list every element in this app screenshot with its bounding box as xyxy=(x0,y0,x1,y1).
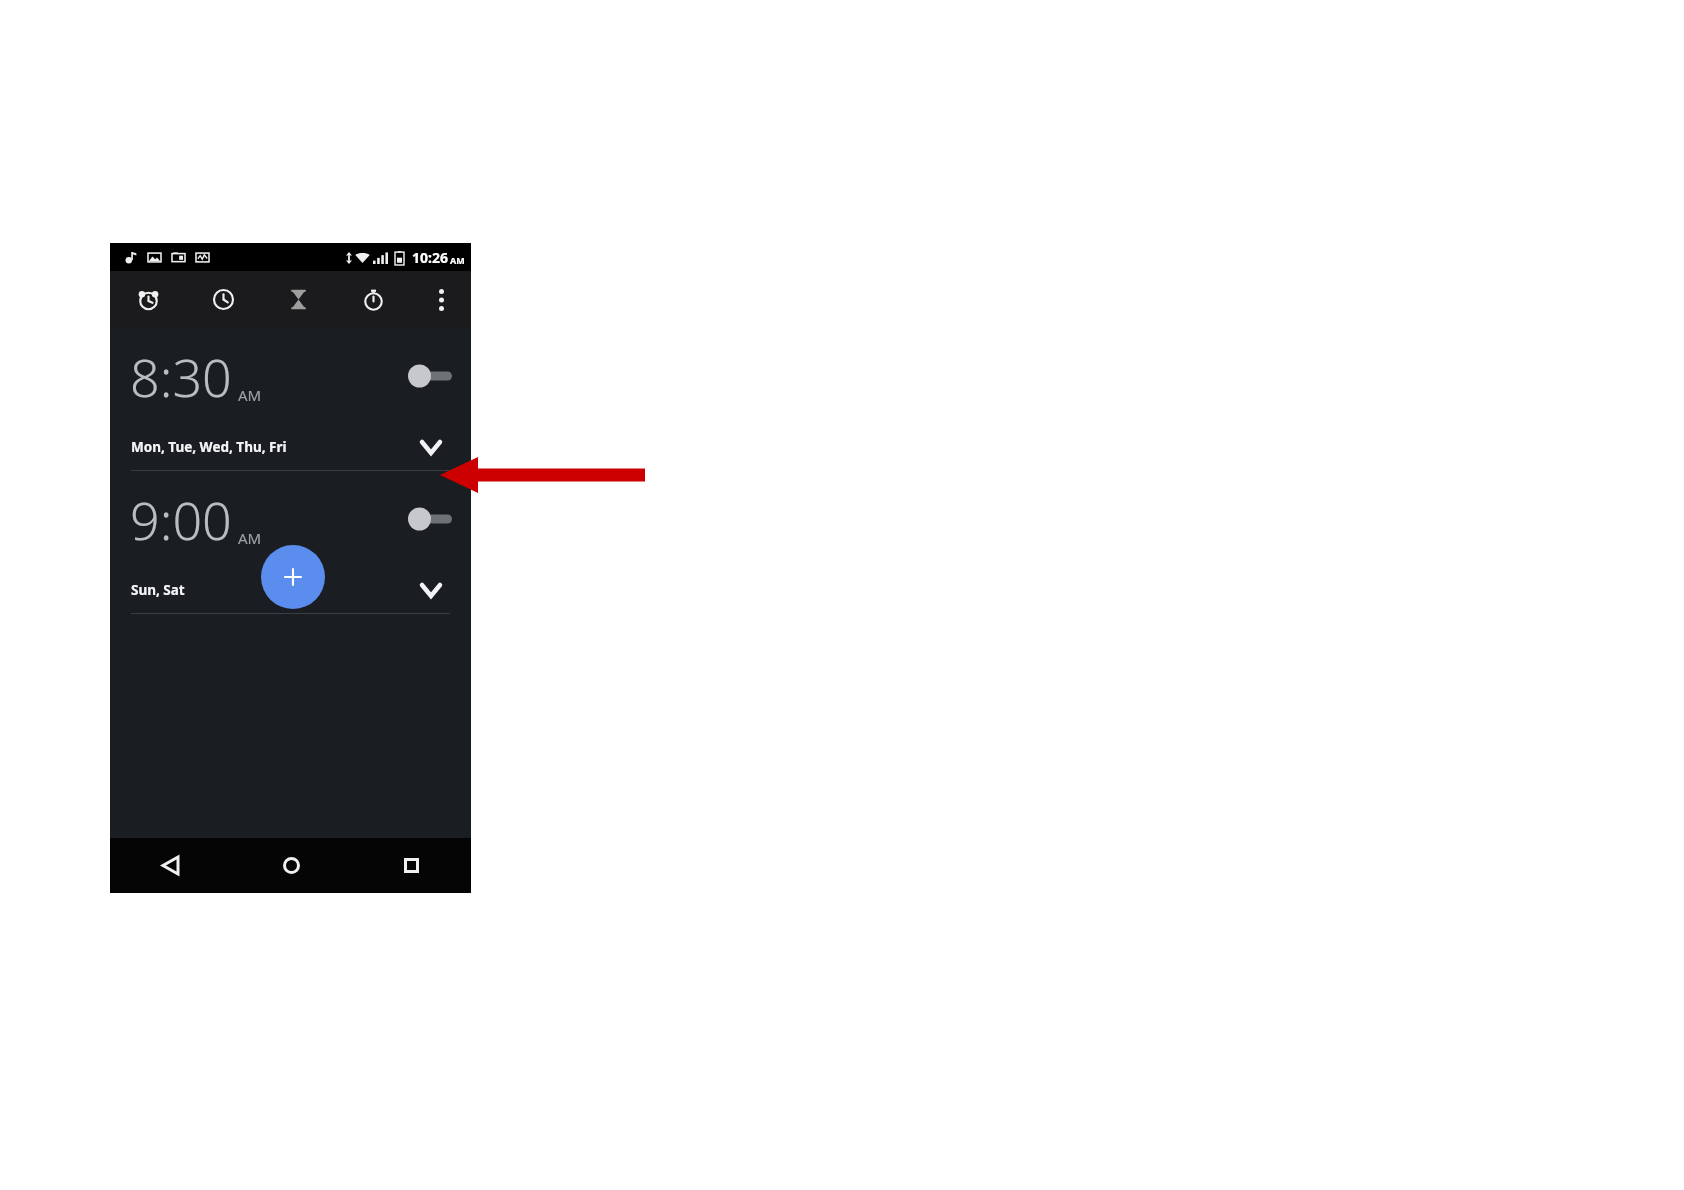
button[interactable]: Home xyxy=(231,838,351,893)
button[interactable]: Stopwatch xyxy=(336,271,411,328)
button[interactable]: Recent apps xyxy=(351,838,471,893)
staticText: 9:00 xyxy=(130,484,232,555)
staticText: AM xyxy=(238,528,262,548)
button[interactable]: Mon, Tue, Wed, Thu, Fri xyxy=(110,424,471,470)
staticText: Mon, Tue, Wed, Thu, Fri xyxy=(131,438,287,456)
staticText: AM xyxy=(238,385,262,405)
staticText: AM xyxy=(450,254,465,266)
button[interactable]: 9:00 xyxy=(110,471,471,567)
button[interactable]: Expand alarm xyxy=(413,572,449,608)
button[interactable]: Sun, Sat xyxy=(110,567,471,613)
staticText: 8:30 xyxy=(130,341,232,412)
staticText: Sun, Sat xyxy=(131,581,185,599)
button[interactable]: Add alarm xyxy=(261,545,325,609)
button[interactable]: More options xyxy=(411,271,471,328)
button[interactable]: Expand alarm xyxy=(413,429,449,465)
staticText: 10:26 xyxy=(412,248,448,267)
button[interactable]: Toggle alarm xyxy=(406,502,454,536)
button[interactable]: Back xyxy=(110,838,231,893)
button[interactable]: 8:30 xyxy=(110,328,471,424)
button[interactable]: World clock xyxy=(186,271,261,328)
button[interactable]: Alarm xyxy=(110,271,186,328)
button[interactable]: Toggle alarm xyxy=(406,359,454,393)
button[interactable]: Timer xyxy=(261,271,336,328)
